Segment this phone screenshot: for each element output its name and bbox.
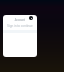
button[interactable]: Profile [29, 16, 33, 20]
button[interactable]: Account [3, 18, 37, 22]
staticText: Sign in to continue [3, 24, 37, 28]
